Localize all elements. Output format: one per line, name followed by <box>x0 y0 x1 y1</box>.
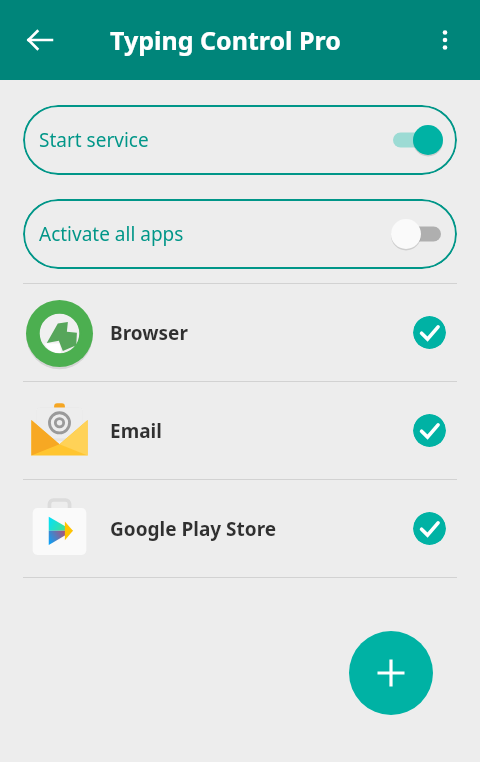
staticText: Browser <box>110 320 188 346</box>
staticText: Google Play Store <box>110 516 277 542</box>
button[interactable]: More options <box>420 15 470 65</box>
staticText: Start service <box>39 127 149 153</box>
button[interactable]: Add app <box>349 631 433 715</box>
staticText: Activate all apps <box>39 221 184 247</box>
button[interactable]: Activate all apps <box>23 199 457 269</box>
button[interactable]: Browser enabled <box>413 316 446 349</box>
button[interactable]: Google Play Store <box>0 480 480 577</box>
button[interactable]: Email <box>0 382 480 479</box>
staticText: Typing Control Pro <box>110 23 341 57</box>
button[interactable]: Email enabled <box>413 414 446 447</box>
button[interactable]: Start service <box>23 105 457 175</box>
button[interactable]: Google Play Store enabled <box>413 512 446 545</box>
button[interactable]: Back <box>14 14 66 66</box>
button[interactable]: Browser <box>0 284 480 381</box>
staticText: Email <box>110 418 162 444</box>
